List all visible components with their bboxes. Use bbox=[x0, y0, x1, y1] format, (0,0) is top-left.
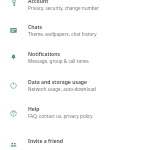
staticText: Notifications bbox=[28, 51, 60, 58]
staticText: Data and storage usage bbox=[28, 79, 88, 86]
button[interactable] bbox=[0, 17, 150, 44]
staticText: Privacy, security, change number bbox=[28, 5, 100, 11]
staticText: FAQ, contact us, privacy policy bbox=[28, 113, 93, 119]
staticText: Account bbox=[28, 0, 49, 5]
staticText: Network usage, auto-download bbox=[28, 86, 96, 92]
staticText: Help bbox=[28, 106, 40, 113]
other: Help bbox=[10, 110, 17, 117]
staticText: Theme, wallpapers, chat history bbox=[28, 31, 97, 37]
button[interactable] bbox=[0, 43, 150, 70]
staticText: Chats bbox=[28, 24, 43, 31]
button[interactable] bbox=[0, 100, 150, 127]
other: Data and storage usage bbox=[10, 82, 17, 89]
button[interactable] bbox=[0, 0, 150, 16]
other: Account bbox=[10, 0, 18, 7]
button[interactable] bbox=[0, 72, 150, 99]
staticText: Message, group & call tones bbox=[28, 58, 89, 64]
other: Invite a friend bbox=[10, 141, 17, 148]
staticText: Invite a friend bbox=[28, 138, 63, 145]
other: Notifications bbox=[10, 53, 17, 60]
other: Chats bbox=[10, 27, 17, 34]
button[interactable] bbox=[0, 131, 150, 150]
